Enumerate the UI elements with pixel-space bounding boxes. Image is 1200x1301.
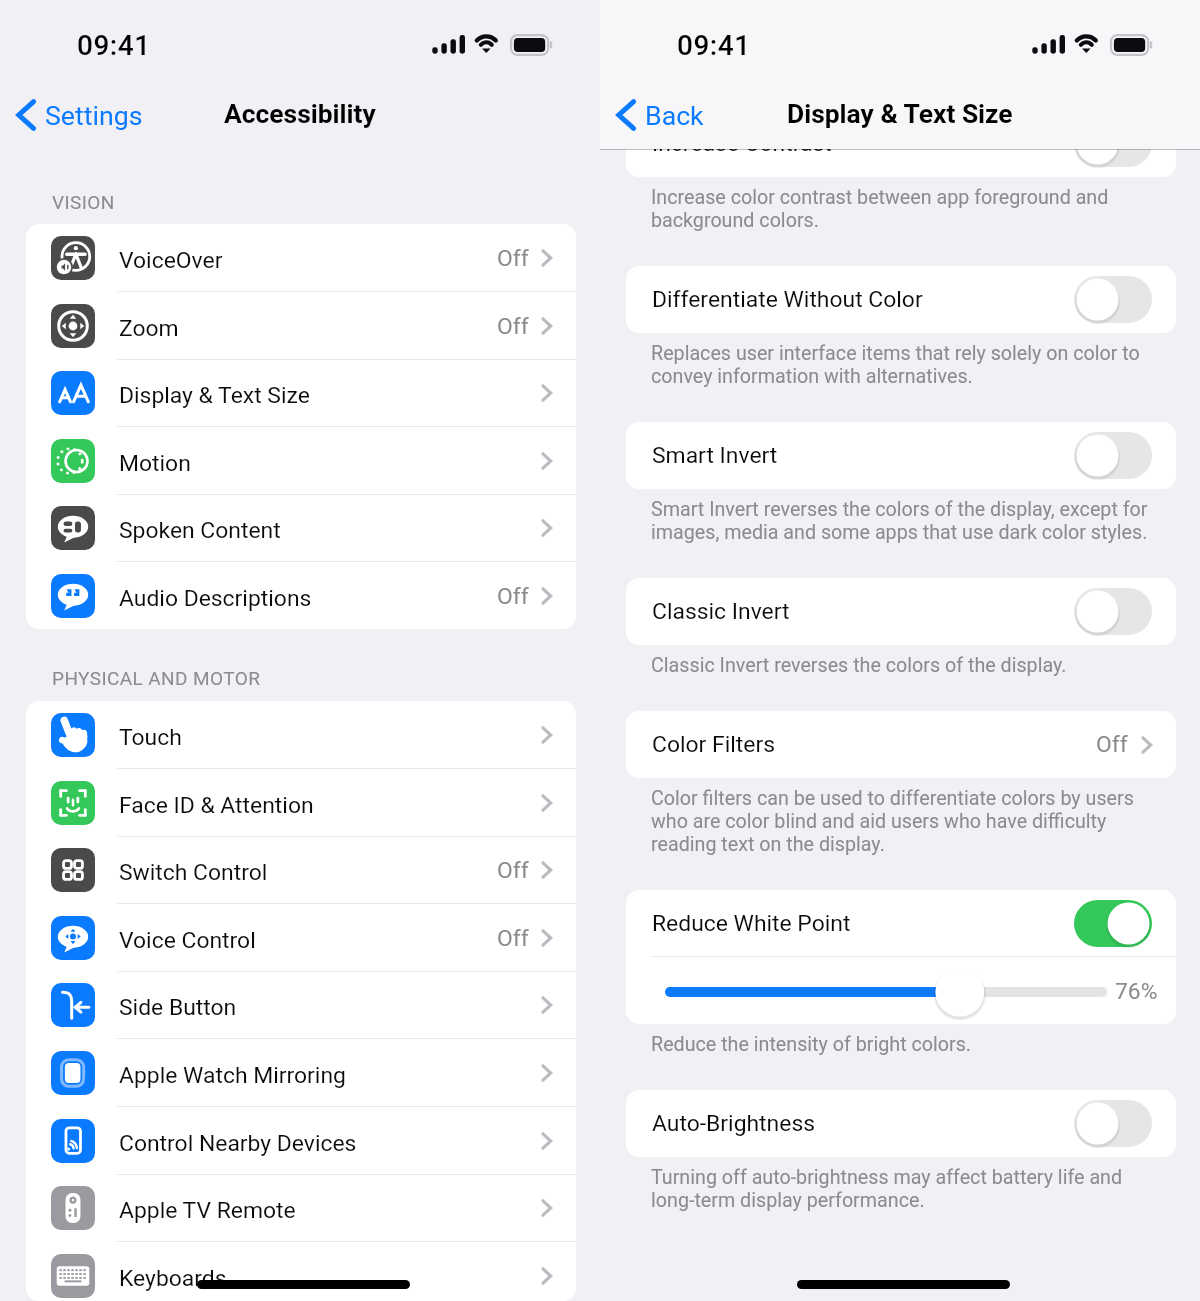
staticText: Apple Watch Mirroring <box>119 1062 346 1089</box>
staticText: Display & Text Size <box>119 382 310 409</box>
staticText: Face ID & Attention <box>119 792 314 819</box>
staticText: Zoom <box>119 315 179 342</box>
staticText: Classic Invert <box>652 598 790 625</box>
staticText: Switch Control <box>119 859 268 886</box>
button[interactable]: Back <box>610 81 710 149</box>
staticText: PHYSICAL AND MOTOR <box>52 667 261 689</box>
staticText: VoiceOver <box>119 247 223 274</box>
staticText: Audio Descriptions <box>119 585 312 612</box>
staticText: Voice Control <box>119 927 256 954</box>
button[interactable]: Motion <box>26 427 576 495</box>
staticText: Keyboards <box>119 1265 227 1292</box>
button[interactable]: Spoken Content <box>26 494 576 562</box>
staticText: Smart Invert reverses the colors of the … <box>651 498 1148 544</box>
staticText: Color filters can be used to differentia… <box>651 787 1134 856</box>
button[interactable]: Keyboards <box>26 1242 576 1301</box>
staticText: Off <box>497 857 529 884</box>
button[interactable]: Smart Invert <box>626 422 1176 489</box>
staticText: Settings <box>45 100 143 131</box>
staticText: Increase color contrast between app fore… <box>651 186 1109 232</box>
staticText: Classic Invert reverses the colors of th… <box>651 654 1067 677</box>
button[interactable]: Side Button <box>26 971 576 1039</box>
staticText: Reduce the intensity of bright colors. <box>651 1033 972 1056</box>
staticText: Increase Contrast <box>652 130 832 157</box>
staticText: Off <box>497 313 529 340</box>
button[interactable]: Zoom <box>26 292 576 360</box>
button[interactable]: Touch <box>26 701 576 769</box>
staticText: Off <box>497 583 529 610</box>
staticText: Reduce White Point <box>652 910 851 937</box>
staticText: Accessibility <box>224 99 376 130</box>
button[interactable]: VoiceOver <box>26 224 576 292</box>
staticText: VISION <box>52 191 115 213</box>
staticText: Off <box>497 245 529 272</box>
staticText: Differentiate Without Color <box>652 286 923 313</box>
staticText: 09:41 <box>677 29 751 62</box>
button[interactable]: Display & Text Size <box>26 359 576 427</box>
staticText: Side Button <box>119 994 237 1021</box>
staticText: Back <box>645 100 704 131</box>
staticText: Motion <box>119 450 191 477</box>
staticText: Off <box>497 925 529 952</box>
staticText: 76% <box>1115 978 1158 1005</box>
button[interactable]: Increase Contrast <box>626 110 1176 177</box>
button[interactable]: Differentiate Without Color <box>626 266 1176 333</box>
staticText: Apple TV Remote <box>119 1197 296 1224</box>
staticText: Auto-Brightness <box>652 1110 816 1137</box>
button[interactable]: Apple Watch Mirroring <box>26 1039 576 1107</box>
button[interactable]: Color Filters <box>626 711 1176 778</box>
button[interactable]: Switch Control <box>26 836 576 904</box>
staticText: Replaces user interface items that rely … <box>651 342 1140 388</box>
staticText: Smart Invert <box>652 442 778 469</box>
button[interactable]: Settings <box>10 81 149 149</box>
staticText: Off <box>1096 731 1128 758</box>
staticText: Touch <box>119 724 182 751</box>
staticText: Color Filters <box>652 731 775 758</box>
button[interactable]: Reduce White Point <box>626 890 1176 956</box>
button[interactable]: Apple TV Remote <box>26 1174 576 1242</box>
staticText: 09:41 <box>77 29 151 62</box>
button[interactable]: Control Nearby Devices <box>26 1107 576 1175</box>
button[interactable]: Auto-Brightness <box>626 1090 1176 1157</box>
staticText: Display & Text Size <box>787 99 1013 130</box>
staticText: Control Nearby Devices <box>119 1130 357 1157</box>
staticText: Spoken Content <box>119 517 281 544</box>
button[interactable]: Voice Control <box>26 904 576 972</box>
button[interactable]: Audio Descriptions <box>26 562 576 629</box>
button[interactable]: Classic Invert <box>626 578 1176 645</box>
button[interactable]: Face ID & Attention <box>26 769 576 837</box>
staticText: Turning off auto-brightness may affect b… <box>651 1166 1123 1212</box>
